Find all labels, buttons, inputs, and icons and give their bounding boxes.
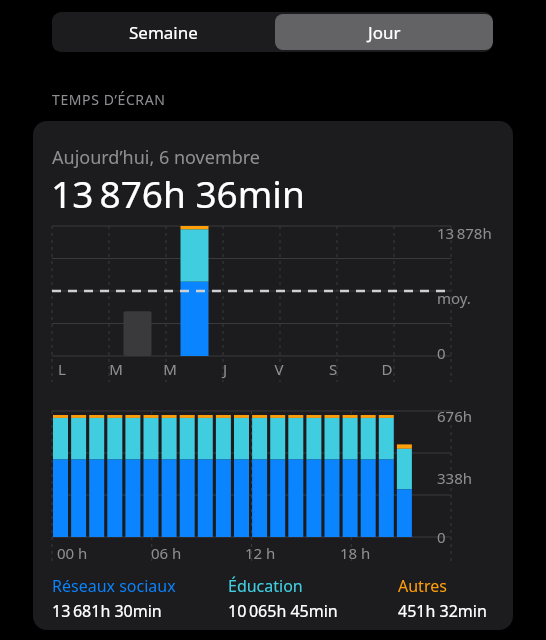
staticText: M xyxy=(106,359,126,379)
button[interactable]: Éducation xyxy=(228,575,338,622)
staticText: M xyxy=(160,359,180,379)
staticText: S xyxy=(323,359,343,379)
staticText: 00 h xyxy=(57,543,88,563)
button[interactable]: Réseaux sociaux xyxy=(52,575,176,622)
button[interactable]: Jour xyxy=(275,14,493,50)
staticText: 451h 32min xyxy=(398,600,487,622)
staticText: Réseaux sociaux xyxy=(52,575,176,597)
staticText: Éducation xyxy=(228,575,303,597)
staticText: 18 h xyxy=(340,543,371,563)
staticText: Semaine xyxy=(129,21,198,44)
staticText: Autres xyxy=(398,575,447,597)
staticText: 13 876h 36min xyxy=(51,168,305,218)
staticText: J xyxy=(215,359,235,379)
button[interactable]: Autres xyxy=(398,575,487,622)
staticText: 10 065h 45min xyxy=(228,600,338,622)
staticText: L xyxy=(52,359,72,379)
staticText: Aujourd’hui, 6 novembre xyxy=(52,145,261,170)
staticText: 12 h xyxy=(245,543,276,563)
staticText: 0 xyxy=(437,527,446,547)
staticText: 338h xyxy=(437,468,473,488)
button[interactable]: Semaine xyxy=(52,12,275,52)
staticText: 06 h xyxy=(151,543,182,563)
staticText: D xyxy=(377,359,397,379)
staticText: 0 xyxy=(437,343,446,363)
button[interactable]: Aujourd’hui, 6 novembre xyxy=(33,121,513,630)
staticText: V xyxy=(269,359,289,379)
staticText: 676h xyxy=(437,406,473,426)
staticText: moy. xyxy=(437,288,471,308)
staticText: 13 681h 30min xyxy=(52,600,162,622)
staticText: TEMPS D’ÉCRAN xyxy=(52,90,166,109)
staticText: Jour xyxy=(368,21,401,44)
staticText: 13 878h xyxy=(437,223,492,243)
